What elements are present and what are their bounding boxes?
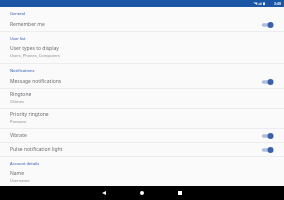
staticText: General (10, 11, 25, 16)
staticText: 2:48 (274, 1, 281, 6)
staticText: Remember me (10, 21, 260, 28)
staticText: Vibrate (10, 132, 260, 139)
button[interactable]: Priority ringtone (0, 109, 284, 126)
button[interactable]: Recent apps (161, 186, 199, 200)
staticText: Pulse notification light (10, 146, 260, 153)
button[interactable]: Vibrate (0, 129, 284, 142)
button[interactable]: Name (0, 168, 284, 185)
staticText: Ringtone (10, 91, 32, 98)
staticText: Message notifications (10, 78, 260, 85)
staticText: User types to display (10, 45, 59, 52)
staticText: Account details (10, 161, 40, 166)
staticText: Users, Phones, Computers (10, 53, 60, 58)
staticText: Chimes (10, 99, 24, 104)
staticText: Notifications (10, 68, 35, 73)
button[interactable]: Remember me (0, 18, 284, 31)
button[interactable]: Message notifications (0, 75, 284, 88)
staticText: Name (10, 170, 25, 177)
button[interactable]: Home (123, 186, 161, 200)
staticText: User list (10, 36, 26, 41)
staticText: Username (10, 178, 30, 183)
button[interactable]: Back (85, 186, 123, 200)
button[interactable]: Ringtone (0, 89, 284, 106)
staticText: Priority ringtone (10, 111, 49, 118)
staticText: Pressure (10, 119, 27, 124)
button[interactable]: User types to display (0, 43, 284, 60)
button[interactable]: Pulse notification light (0, 143, 284, 156)
